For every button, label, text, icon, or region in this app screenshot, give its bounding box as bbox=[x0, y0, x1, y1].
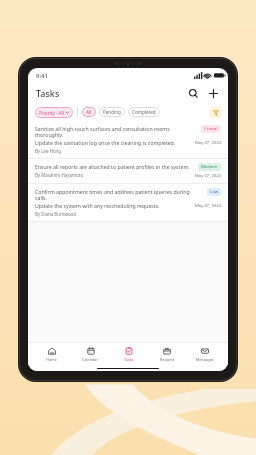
button[interactable]: Request bbox=[148, 343, 186, 365]
staticText: Messages bbox=[196, 357, 214, 362]
staticText: Calendar bbox=[82, 357, 99, 362]
button[interactable]: Tasks bbox=[110, 343, 148, 365]
staticText: All bbox=[86, 109, 92, 115]
staticText: By Lee Hong bbox=[35, 148, 61, 154]
button[interactable]: Add task bbox=[206, 86, 220, 100]
staticText: Completed bbox=[132, 109, 156, 115]
button[interactable]: Calendar bbox=[71, 343, 110, 365]
button[interactable]: Confirm appointment times and address pa… bbox=[28, 184, 228, 221]
staticText: May 07, 2024 bbox=[195, 203, 221, 209]
staticText: Priority - All bbox=[39, 110, 64, 116]
button[interactable]: All bbox=[82, 107, 96, 117]
button[interactable]: Ensure all reports are attached to patie… bbox=[28, 159, 228, 183]
button[interactable]: Messages bbox=[186, 343, 224, 365]
button[interactable]: Priority - All bbox=[35, 107, 73, 118]
staticText: Medium bbox=[201, 164, 218, 170]
staticText: Sanitize all high-touch surfaces and con… bbox=[35, 125, 190, 139]
staticText: Update the sanitation log once the clean… bbox=[35, 139, 176, 146]
staticText: Tasks bbox=[124, 357, 134, 362]
staticText: Pending bbox=[103, 109, 121, 115]
button[interactable]: Search bbox=[186, 86, 200, 100]
staticText: May 07, 2024 bbox=[195, 173, 221, 179]
staticText: Low bbox=[210, 189, 218, 195]
staticText: Update the system with any rescheduling … bbox=[35, 202, 160, 209]
button[interactable]: Pending bbox=[99, 107, 125, 117]
staticText: Request bbox=[160, 357, 175, 362]
staticText: Critical bbox=[204, 126, 218, 132]
staticText: Home bbox=[46, 357, 57, 362]
button[interactable]: Home bbox=[32, 343, 71, 365]
button[interactable]: Sanitize all high-touch surfaces and con… bbox=[28, 121, 228, 158]
staticText: Ensure all reports are attached to patie… bbox=[35, 163, 190, 170]
staticText: 9:41 bbox=[36, 72, 48, 80]
staticText: Confirm appointment times and address pa… bbox=[35, 188, 190, 202]
staticText: Tasks bbox=[36, 87, 60, 99]
staticText: May 07, 2024 bbox=[195, 140, 221, 146]
staticText: By Diana Burnwood bbox=[35, 211, 76, 217]
button[interactable]: Filter bbox=[210, 107, 221, 118]
button[interactable]: Completed bbox=[128, 107, 160, 117]
staticText: By Masahiro Hayamoto bbox=[35, 172, 84, 178]
